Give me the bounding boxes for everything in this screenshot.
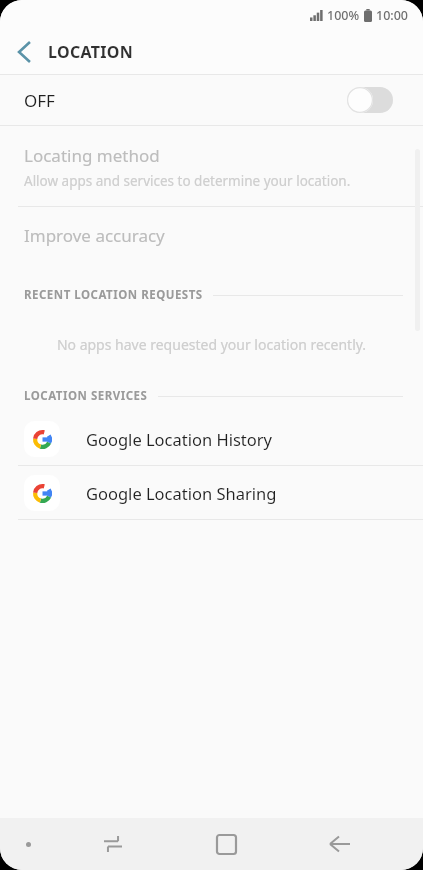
button[interactable]: Back [0,30,48,74]
staticText: LOCATION [48,41,134,63]
staticText: OFF [24,89,55,112]
staticText: Allow apps and services to determine you… [24,172,351,190]
button[interactable]: Google Location Sharing [0,466,423,519]
button[interactable]: Locating method [0,126,423,206]
button[interactable]: Recent apps [56,818,169,870]
staticText: Google Location Sharing [86,482,277,504]
staticText: 10:00 [376,7,409,24]
button[interactable]: Home [169,818,283,870]
staticText: 100% [327,7,360,24]
button[interactable]: Back [283,818,397,870]
staticText: Improve accuracy [24,224,165,247]
staticText: RECENT LOCATION REQUESTS [24,287,203,303]
button[interactable]: Google Location History [0,412,423,465]
staticText: No apps have requested your location rec… [0,335,423,354]
staticText: LOCATION SERVICES [24,388,148,404]
staticText: Locating method [24,144,160,167]
button[interactable]: OFF [0,75,423,125]
button[interactable]: Improve accuracy [0,207,423,263]
staticText: Google Location History [86,428,273,450]
